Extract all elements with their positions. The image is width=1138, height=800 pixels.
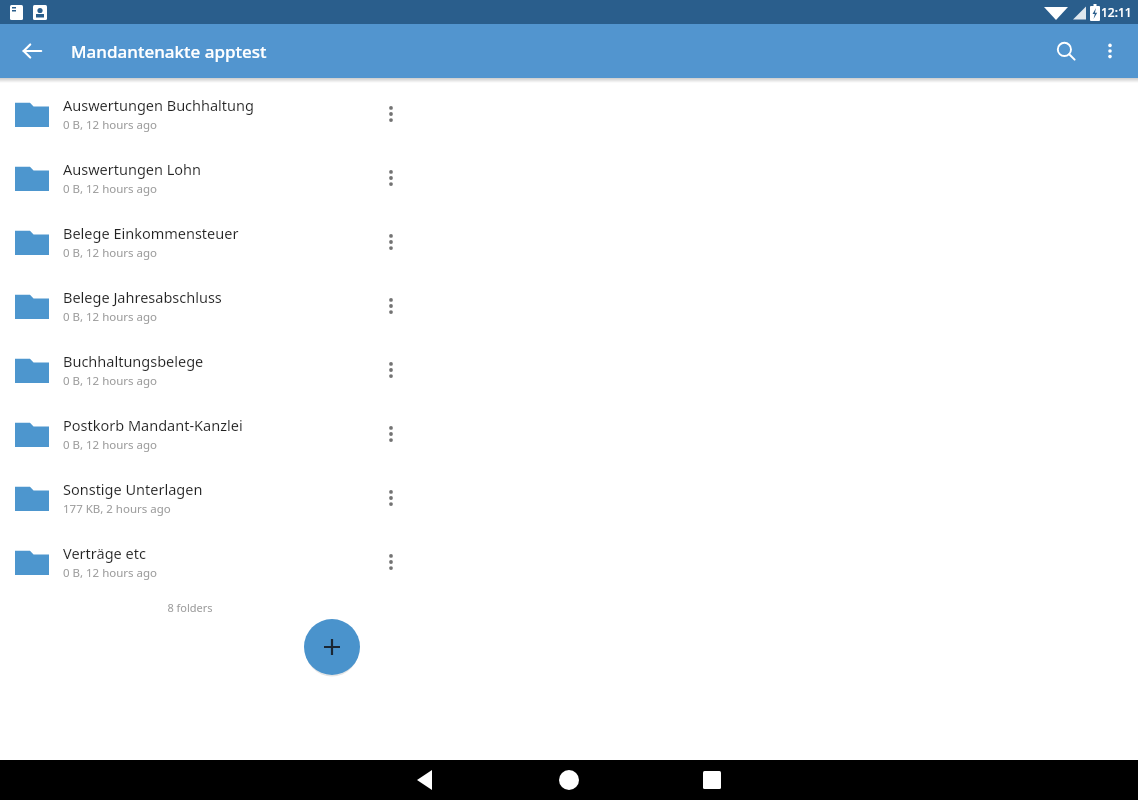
staticText: Belege Jahresabschluss [63, 287, 222, 307]
button[interactable]: More options for Sonstige Unterlagen [369, 466, 413, 530]
button[interactable]: More options for Auswertungen Lohn [369, 146, 413, 210]
button[interactable]: Belege Einkommensteuer [0, 210, 1138, 274]
button[interactable]: Sonstige Unterlagen [0, 466, 1138, 530]
button[interactable]: More options for Buchhaltungsbelege [369, 338, 413, 402]
staticText: Postkorb Mandant-Kanzlei [63, 415, 243, 435]
staticText: Buchhaltungsbelege [63, 351, 204, 371]
staticText: Sonstige Unterlagen [63, 479, 203, 499]
staticText: Belege Einkommensteuer [63, 223, 239, 243]
button[interactable]: More options for Postkorb Mandant-Kanzle… [369, 402, 413, 466]
staticText: 0 B, 12 hours ago [63, 245, 158, 261]
staticText: 0 B, 12 hours ago [63, 565, 158, 581]
button[interactable]: Home [545, 760, 593, 800]
staticText: 0 B, 12 hours ago [63, 437, 158, 453]
button[interactable]: Back [12, 31, 52, 71]
button[interactable]: Search [1044, 29, 1088, 73]
button[interactable]: More options for Belege Jahresabschluss [369, 274, 413, 338]
button[interactable]: Back [400, 760, 448, 800]
staticText: 177 KB, 2 hours ago [63, 501, 171, 517]
button[interactable]: More options for Verträge etc [369, 530, 413, 594]
button[interactable]: Belege Jahresabschluss [0, 274, 1138, 338]
staticText: 0 B, 12 hours ago [63, 373, 158, 389]
staticText: 0 B, 12 hours ago [63, 117, 158, 133]
button[interactable]: Verträge etc [0, 530, 1138, 594]
button[interactable]: Auswertungen Lohn [0, 146, 1138, 210]
staticText: Auswertungen Buchhaltung [63, 95, 254, 115]
button[interactable]: Recent apps [688, 760, 736, 800]
staticText: 8 folders [0, 600, 380, 615]
button[interactable]: More options for Auswertungen Buchhaltun… [369, 82, 413, 146]
staticText: 12:11 [1101, 4, 1132, 20]
button[interactable]: Postkorb Mandant-Kanzlei [0, 402, 1138, 466]
staticText: Verträge etc [63, 543, 146, 563]
staticText: 0 B, 12 hours ago [63, 181, 158, 197]
button[interactable]: Auswertungen Buchhaltung [0, 82, 1138, 146]
staticText: Auswertungen Lohn [63, 159, 202, 179]
button[interactable]: More options for Belege Einkommensteuer [369, 210, 413, 274]
staticText: Mandantenakte apptest [71, 40, 267, 63]
button[interactable]: More options [1088, 29, 1132, 73]
button[interactable]: Add [304, 619, 360, 675]
button[interactable]: Buchhaltungsbelege [0, 338, 1138, 402]
staticText: 0 B, 12 hours ago [63, 309, 158, 325]
